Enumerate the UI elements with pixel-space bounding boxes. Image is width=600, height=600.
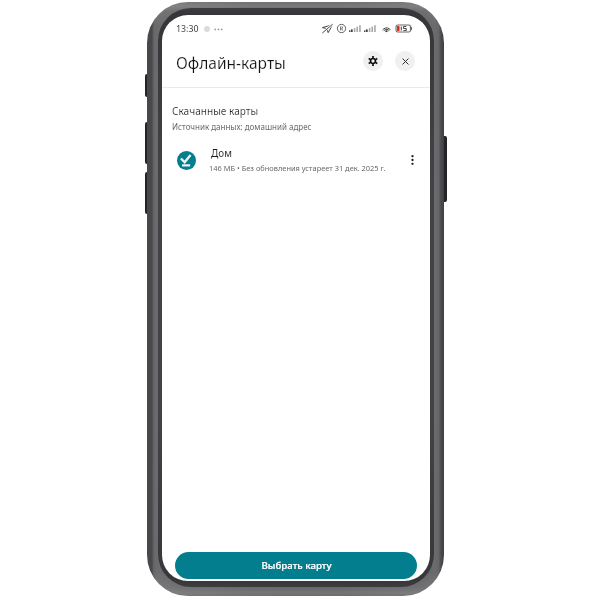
button[interactable]: Выбрать карту bbox=[175, 552, 417, 579]
staticText: Выбрать карту bbox=[261, 559, 332, 572]
staticText: Офлайн-карты bbox=[176, 52, 286, 73]
button[interactable]: Settings bbox=[363, 51, 383, 71]
button[interactable]: Дом bbox=[162, 145, 430, 175]
staticText: 13:30 bbox=[176, 23, 199, 35]
staticText: Источник данных: домашний адрес bbox=[172, 121, 312, 132]
staticText: Скачанные карты bbox=[172, 104, 259, 118]
staticText: Дом bbox=[211, 147, 232, 160]
button[interactable]: More options bbox=[402, 150, 422, 170]
button[interactable]: Close bbox=[395, 51, 415, 71]
staticText: 146 МБ • Без обновления устареет 31 дек.… bbox=[209, 163, 386, 173]
